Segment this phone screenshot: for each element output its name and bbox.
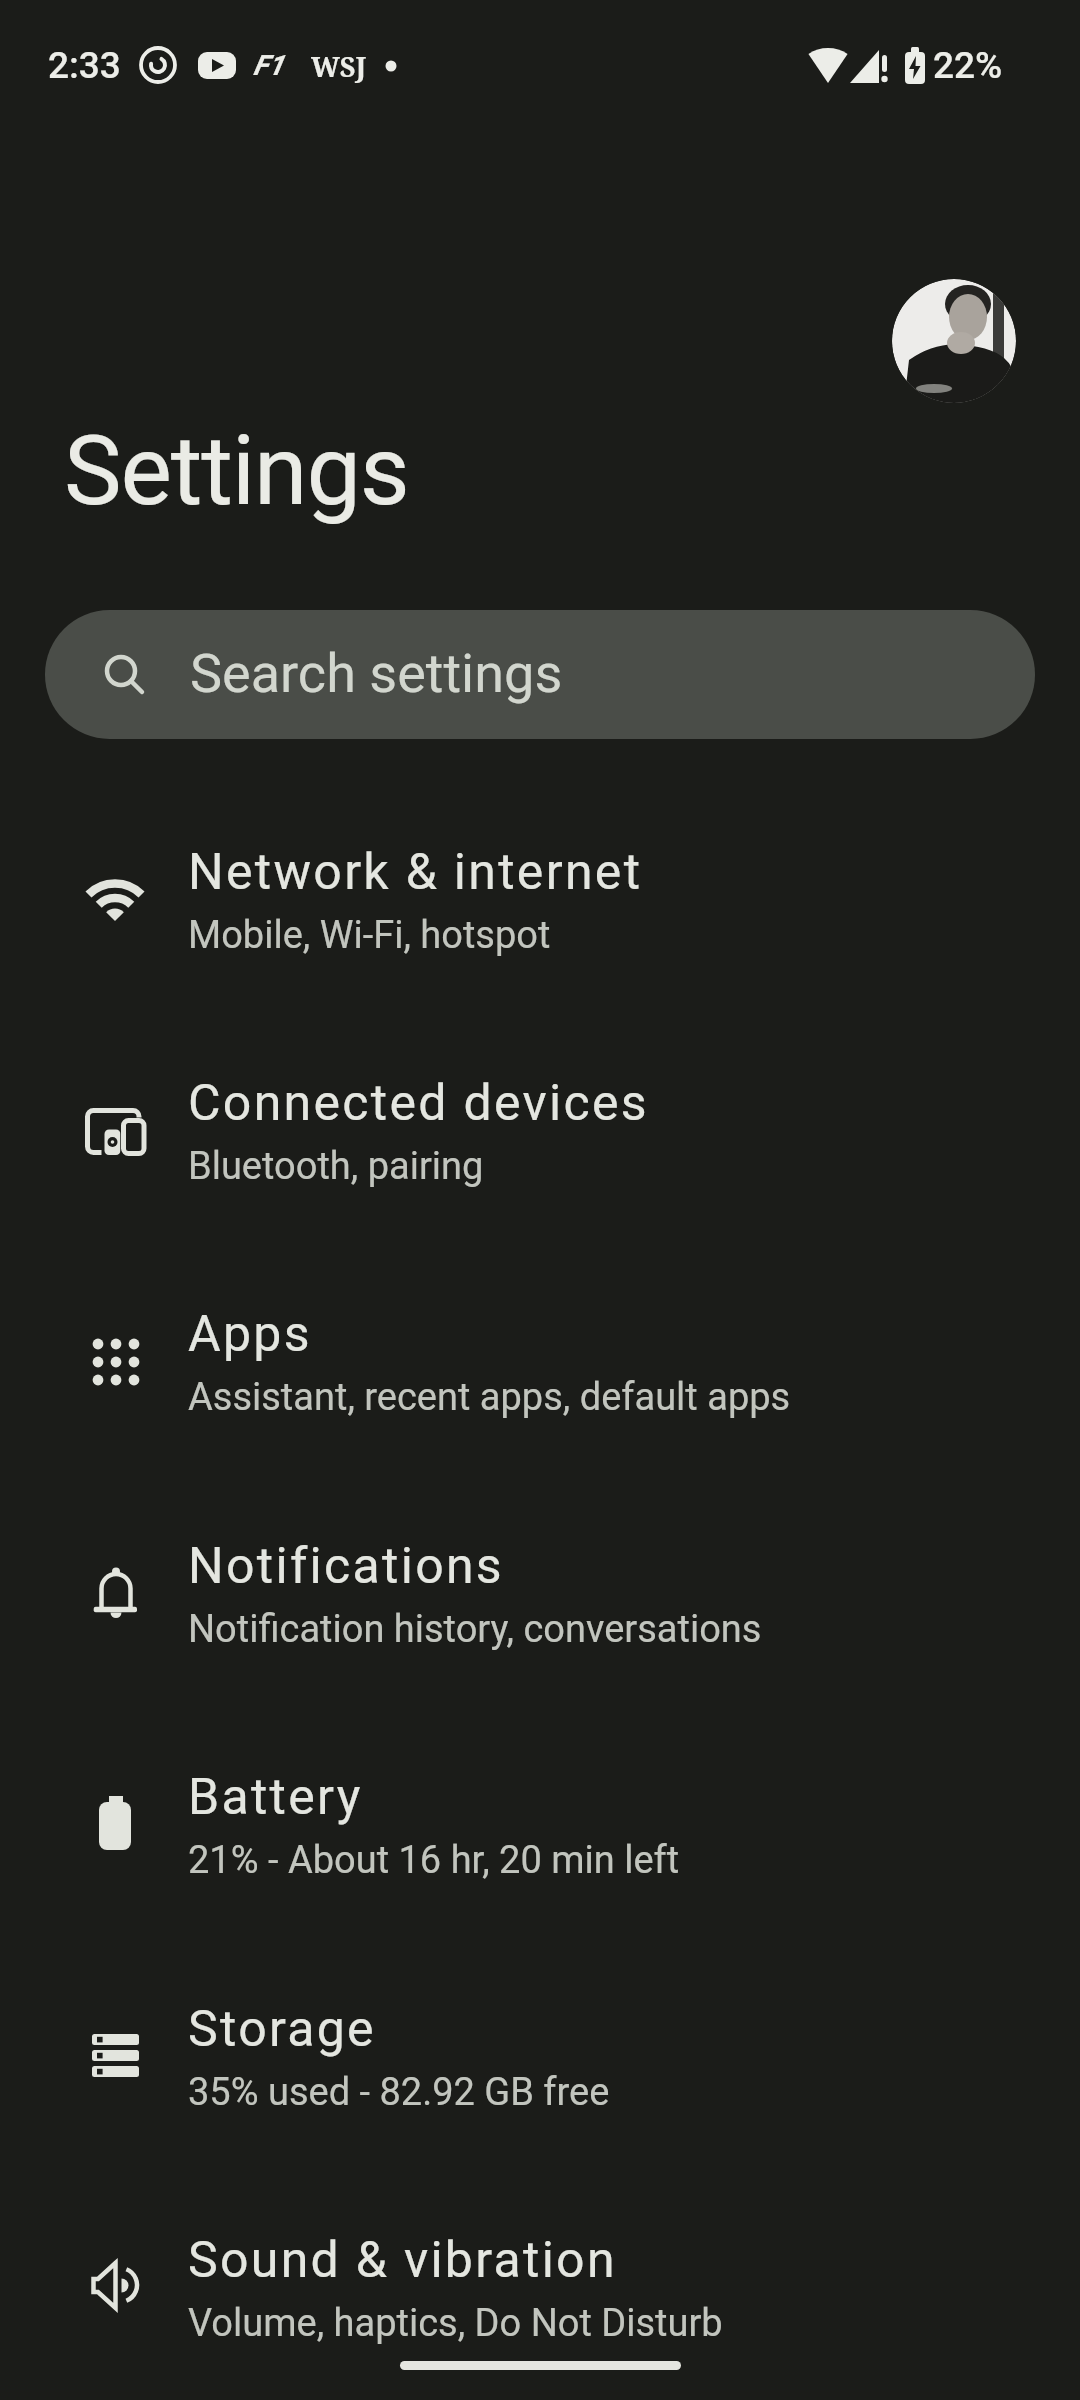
staticText: Sound & vibration (188, 2231, 617, 2290)
button[interactable]: Network & internet (0, 784, 1080, 1015)
staticText: Mobile, Wi-Fi, hotspot (188, 913, 551, 958)
staticText: Apps (188, 1305, 312, 1364)
button[interactable]: Notifications (0, 1478, 1080, 1709)
button[interactable]: Connected devices (0, 1015, 1080, 1246)
button[interactable]: Battery (0, 1709, 1080, 1940)
staticText: Notifications (188, 1537, 504, 1596)
staticText: Battery (188, 1768, 363, 1827)
staticText: 35% used - 82.92 GB free (188, 2070, 610, 2115)
button[interactable]: Apps (0, 1246, 1080, 1477)
staticText: 21% - About 16 hr, 20 min left (188, 1838, 680, 1883)
button[interactable]: Sound & vibration (0, 2172, 1080, 2400)
button[interactable]: Search settings (45, 610, 1035, 739)
staticText: 2:33 (48, 44, 121, 87)
staticText: Bluetooth, pairing (188, 1144, 484, 1189)
staticText: 22% (933, 44, 1003, 87)
staticText: Network & internet (188, 843, 643, 902)
staticText: Connected devices (188, 1074, 649, 1133)
staticText: WSJ (311, 48, 367, 85)
button[interactable] (892, 279, 1016, 403)
button[interactable]: Storage (0, 1941, 1080, 2172)
staticText: Storage (188, 2000, 376, 2059)
staticText: Assistant, recent apps, default apps (188, 1375, 791, 1420)
staticText: Notification history, conversations (188, 1607, 762, 1652)
staticText: Settings (64, 414, 409, 528)
staticText: Search settings (190, 642, 563, 705)
staticText: Volume, haptics, Do Not Disturb (188, 2301, 723, 2346)
staticText: F1 (253, 49, 284, 82)
